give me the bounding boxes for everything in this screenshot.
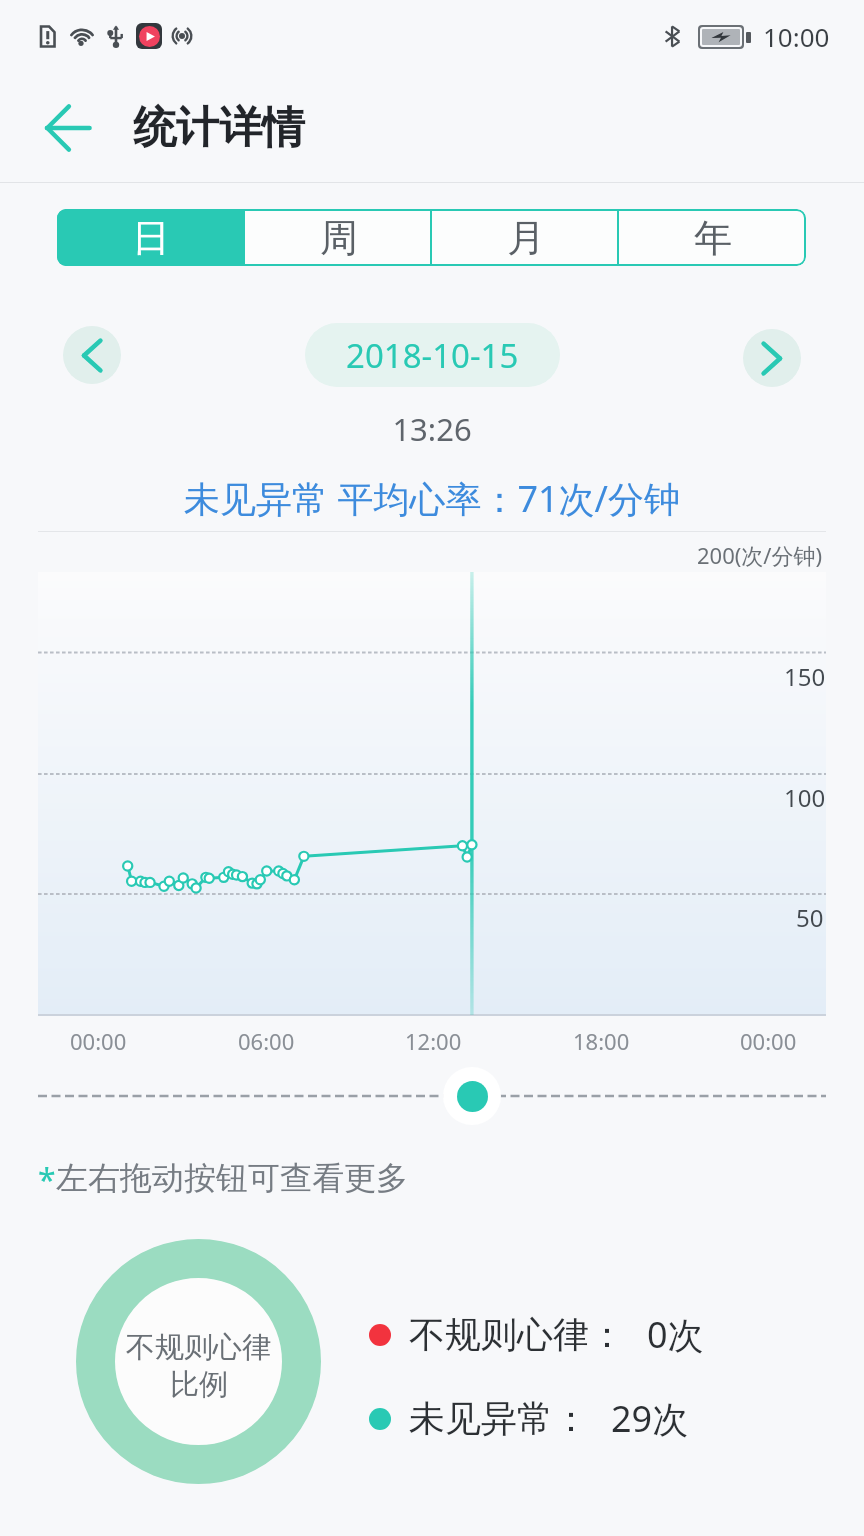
button[interactable]: 2018-10-15 bbox=[305, 323, 560, 387]
staticText: 00:00 bbox=[70, 1026, 127, 1056]
button[interactable]: 年 bbox=[619, 209, 806, 266]
staticText: 06:00 bbox=[238, 1026, 295, 1056]
staticText: * bbox=[38, 1158, 56, 1202]
button[interactable]: Drag handle bbox=[443, 1067, 501, 1125]
button[interactable]: 日 bbox=[57, 209, 245, 266]
staticText: 150 bbox=[784, 660, 826, 693]
button[interactable]: Previous day bbox=[63, 326, 121, 384]
staticText: 未见异常： bbox=[409, 1396, 589, 1441]
staticText: 10:00 bbox=[763, 19, 830, 54]
staticText: 周 bbox=[320, 214, 358, 262]
staticText: 月 bbox=[507, 214, 545, 262]
staticText: 比例 bbox=[170, 1366, 228, 1403]
staticText: 不规则心律 bbox=[126, 1329, 271, 1366]
staticText: 未见异常 平均心率：71次/分钟 bbox=[0, 474, 864, 523]
staticText: 0次 bbox=[647, 1310, 704, 1359]
staticText: 左右拖动按钮可查看更多 bbox=[56, 1158, 408, 1198]
staticText: 13:26 bbox=[0, 408, 864, 450]
staticText: 29次 bbox=[611, 1394, 689, 1443]
staticText: 50 bbox=[796, 901, 824, 934]
staticText: 12:00 bbox=[405, 1026, 462, 1056]
staticText: 00:00 bbox=[740, 1026, 797, 1056]
button[interactable]: Back bbox=[28, 88, 108, 168]
button[interactable]: 月 bbox=[432, 209, 619, 266]
staticText: 年 bbox=[694, 214, 732, 262]
staticText: 100 bbox=[784, 781, 826, 814]
staticText: 统计详情 bbox=[133, 101, 305, 155]
staticText: 日 bbox=[132, 214, 170, 262]
staticText: 不规则心律： bbox=[409, 1312, 625, 1357]
staticText: 200(次/分钟) bbox=[697, 540, 823, 570]
button[interactable]: Next day bbox=[743, 329, 801, 387]
staticText: 18:00 bbox=[573, 1026, 630, 1056]
staticText: 2018-10-15 bbox=[346, 333, 519, 378]
button[interactable]: 周 bbox=[245, 209, 432, 266]
